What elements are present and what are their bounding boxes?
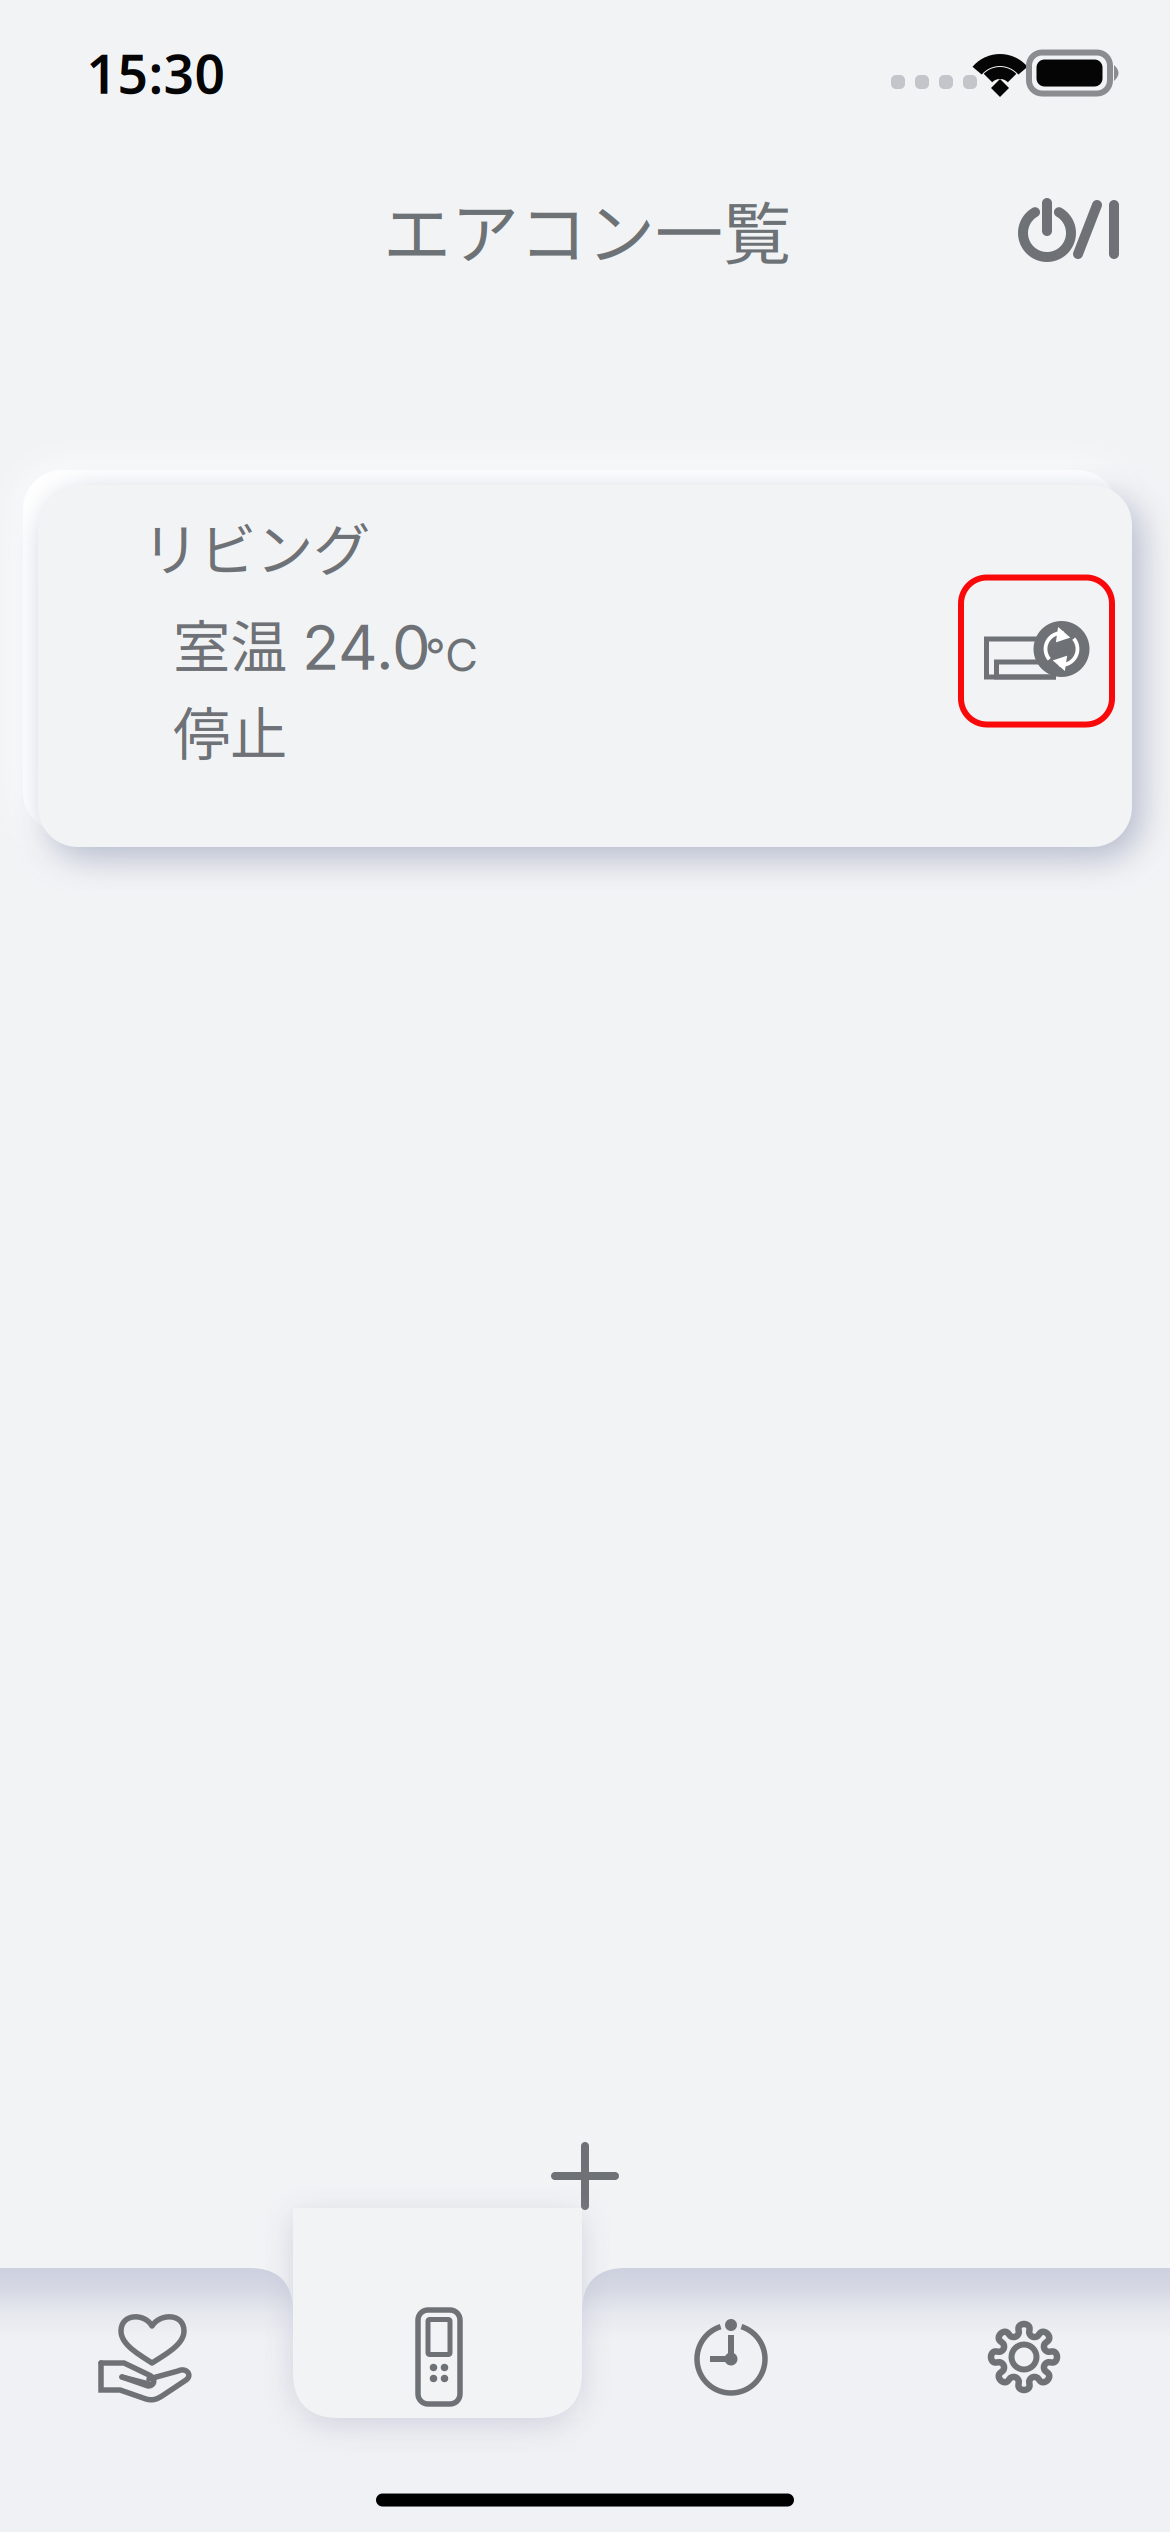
staticText: 停止 (173, 688, 287, 771)
staticText: エアコン一覧 (383, 180, 791, 278)
staticText: リビング (142, 504, 370, 587)
button[interactable]: Air conditioner sync (961, 577, 1112, 724)
staticText: 15:30 (86, 38, 225, 108)
button[interactable]: Remote control (314, 2277, 564, 2437)
button[interactable]: Favourites (21, 2275, 271, 2435)
staticText: 室温 (173, 601, 287, 684)
button[interactable]: Timer (606, 2279, 856, 2439)
button[interactable]: Power on or off all units (995, 175, 1145, 285)
staticText: 24.0 (302, 610, 431, 684)
button[interactable]: Settings (899, 2277, 1149, 2437)
staticText: °C (425, 628, 478, 683)
button[interactable]: Add air conditioner (500, 2111, 670, 2241)
